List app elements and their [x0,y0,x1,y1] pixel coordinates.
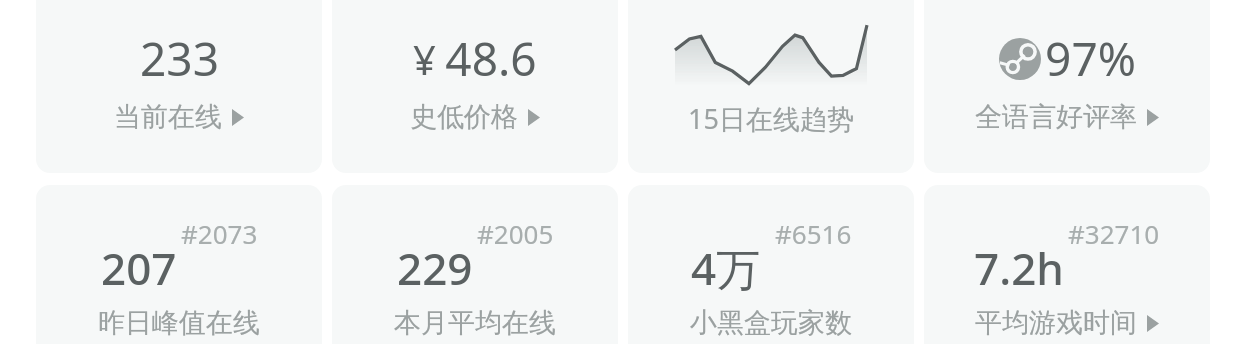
button[interactable]: 15日在线趋势 [628,0,914,173]
staticText: 97% [1045,27,1136,90]
staticText: #2005 [477,216,554,251]
staticText: ¥ [413,32,436,86]
staticText: 229 [397,238,473,298]
button[interactable]: 7.2h [924,185,1210,344]
button[interactable]: 233 [36,0,322,173]
button[interactable]: 229 [332,185,618,344]
staticText: #32710 [1068,216,1160,251]
staticText: #6516 [775,216,852,251]
staticText: 207 [101,238,177,298]
other: Steam [999,38,1041,80]
staticText: 本月平均在线 [394,306,556,340]
staticText: #2073 [181,216,258,251]
button[interactable]: Steam [924,0,1210,173]
staticText: 15日在线趋势 [688,100,854,137]
staticText: 昨日峰值在线 [98,306,260,340]
staticText: 史低价格 [410,100,518,134]
button[interactable]: ¥ [332,0,618,173]
staticText: 7.2h [974,238,1064,298]
staticText: 全语言好评率 [975,100,1137,134]
staticText: 当前在线 [114,100,222,134]
staticText: 4万 [691,238,761,298]
button[interactable]: 207 [36,185,322,344]
staticText: 233 [140,27,219,90]
staticText: 48.6 [445,27,537,90]
staticText: 小黑盒玩家数 [690,306,852,340]
staticText: 平均游戏时间 [975,306,1137,340]
button[interactable]: 4万 [628,185,914,344]
